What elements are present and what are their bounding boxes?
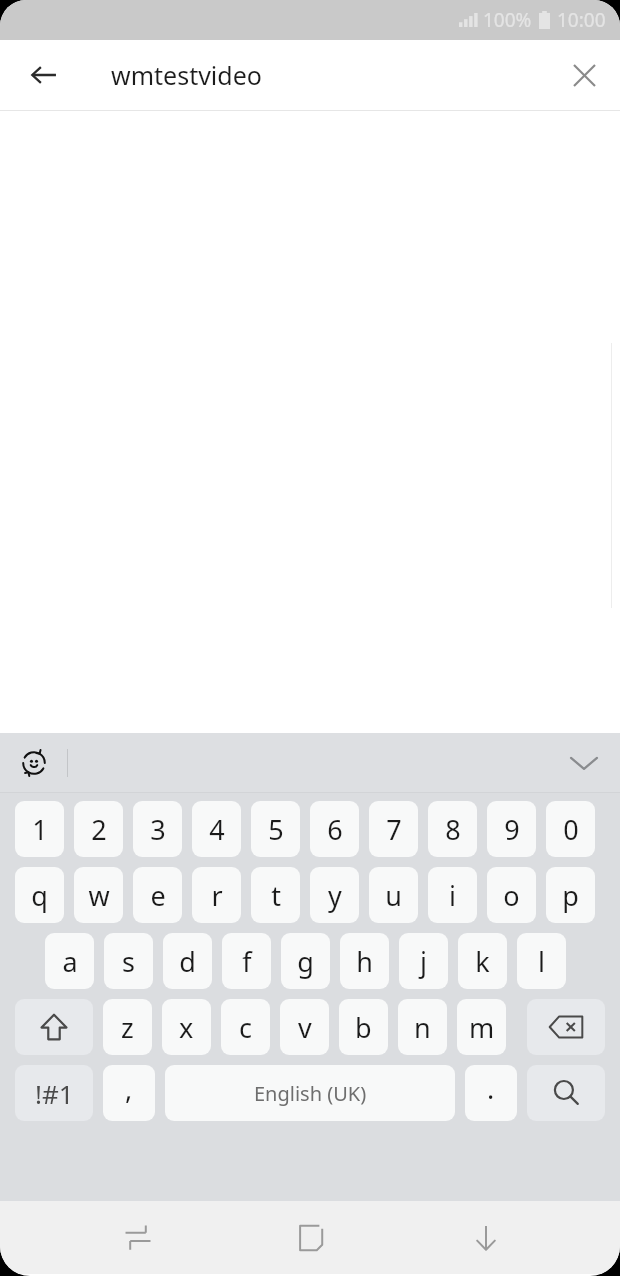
- staticText: 1: [32, 811, 48, 848]
- button[interactable]: b: [339, 999, 388, 1055]
- staticText: z: [121, 1009, 134, 1046]
- button[interactable]: k: [458, 933, 507, 989]
- button[interactable]: 2: [74, 801, 123, 857]
- button[interactable]: 1: [15, 801, 64, 857]
- button[interactable]: ,: [103, 1065, 155, 1121]
- staticText: f: [242, 943, 252, 980]
- button[interactable]: v: [280, 999, 329, 1055]
- staticText: n: [414, 1009, 431, 1046]
- button[interactable]: h: [340, 933, 389, 989]
- staticText: j: [420, 943, 427, 980]
- button[interactable]: r: [192, 867, 241, 923]
- button[interactable]: u: [369, 867, 418, 923]
- button[interactable]: w: [74, 867, 123, 923]
- staticText: 6: [327, 811, 343, 848]
- staticText: ,: [125, 1070, 133, 1107]
- staticText: y: [328, 877, 342, 914]
- button[interactable]: l: [517, 933, 566, 989]
- button[interactable]: e: [133, 867, 182, 923]
- staticText: u: [385, 877, 402, 914]
- button[interactable]: x: [162, 999, 211, 1055]
- button[interactable]: Expand toolbar: [556, 735, 612, 791]
- staticText: a: [62, 943, 78, 980]
- staticText: m: [469, 1009, 495, 1046]
- staticText: e: [150, 877, 166, 914]
- staticText: 9: [504, 811, 520, 848]
- staticText: w: [88, 877, 110, 914]
- button[interactable]: 9: [487, 801, 536, 857]
- staticText: 4: [209, 811, 225, 848]
- button[interactable]: .: [465, 1065, 517, 1121]
- button[interactable]: n: [398, 999, 447, 1055]
- button[interactable]: t: [251, 867, 300, 923]
- staticText: 10:00: [557, 7, 606, 33]
- staticText: !#1: [35, 1076, 74, 1111]
- staticText: 7: [386, 811, 402, 848]
- staticText: 2: [91, 811, 107, 848]
- button[interactable]: Clear: [558, 49, 610, 101]
- button[interactable]: Home: [272, 1201, 348, 1274]
- button[interactable]: c: [221, 999, 270, 1055]
- staticText: 3: [150, 811, 166, 848]
- button[interactable]: y: [310, 867, 359, 923]
- button[interactable]: Back: [16, 47, 72, 103]
- button[interactable]: i: [428, 867, 477, 923]
- button[interactable]: p: [546, 867, 595, 923]
- button[interactable]: g: [281, 933, 330, 989]
- staticText: English (UK): [254, 1080, 367, 1107]
- button[interactable]: j: [399, 933, 448, 989]
- button[interactable]: Shift: [15, 999, 93, 1055]
- staticText: l: [538, 943, 545, 980]
- button[interactable]: m: [457, 999, 506, 1055]
- button[interactable]: q: [15, 867, 64, 923]
- staticText: x: [179, 1009, 194, 1046]
- staticText: r: [211, 877, 223, 914]
- staticText: .: [487, 1070, 495, 1107]
- button[interactable]: 3: [133, 801, 182, 857]
- button[interactable]: s: [104, 933, 153, 989]
- button[interactable]: Backspace: [527, 999, 605, 1055]
- button[interactable]: Search: [527, 1065, 605, 1121]
- staticText: d: [179, 943, 196, 980]
- button[interactable]: !#1: [15, 1065, 93, 1121]
- button[interactable]: 5: [251, 801, 300, 857]
- button[interactable]: 0: [546, 801, 595, 857]
- staticText: 5: [268, 811, 284, 848]
- staticText: v: [298, 1009, 312, 1046]
- button[interactable]: a: [45, 933, 94, 989]
- staticText: k: [475, 943, 490, 980]
- button[interactable]: Emoji and stickers: [6, 735, 62, 791]
- staticText: 100%: [483, 7, 532, 33]
- button[interactable]: English (UK): [165, 1065, 455, 1121]
- staticText: i: [449, 877, 456, 914]
- staticText: o: [503, 877, 520, 914]
- staticText: 8: [445, 811, 461, 848]
- button[interactable]: 8: [428, 801, 477, 857]
- button[interactable]: z: [103, 999, 152, 1055]
- button[interactable]: d: [163, 933, 212, 989]
- button[interactable]: 7: [369, 801, 418, 857]
- button[interactable]: Recent apps: [100, 1201, 176, 1274]
- staticText: g: [297, 943, 314, 980]
- button[interactable]: f: [222, 933, 271, 989]
- staticText: b: [355, 1009, 372, 1046]
- staticText: c: [239, 1009, 252, 1046]
- button[interactable]: 4: [192, 801, 241, 857]
- button[interactable]: o: [487, 867, 536, 923]
- button[interactable]: 6: [310, 801, 359, 857]
- staticText: t: [271, 877, 281, 914]
- staticText: wmtestvideo: [111, 58, 262, 92]
- staticText: s: [122, 943, 135, 980]
- staticText: h: [356, 943, 373, 980]
- staticText: q: [31, 877, 48, 914]
- staticText: 0: [563, 811, 579, 848]
- staticText: p: [562, 877, 579, 914]
- button[interactable]: Hide keyboard: [448, 1201, 524, 1274]
